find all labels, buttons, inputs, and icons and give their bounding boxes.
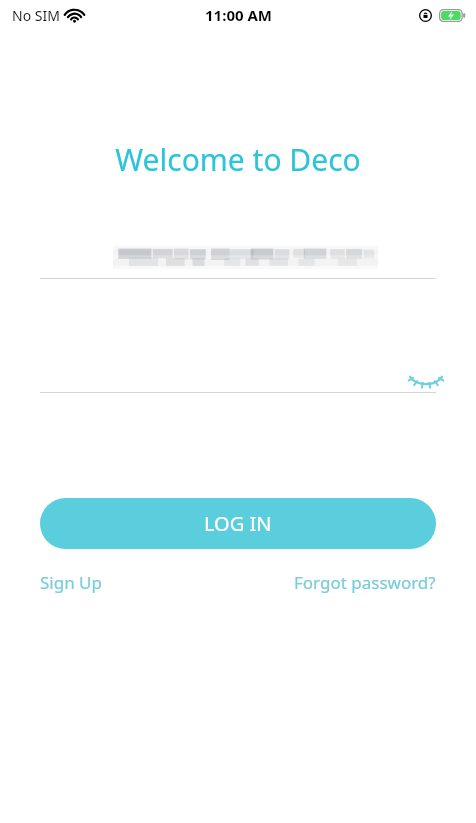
- button[interactable]: LOG IN: [40, 498, 436, 549]
- button[interactable]: Show password: [0, 279, 476, 392]
- button[interactable]: Show password: [409, 366, 443, 386]
- staticText: 11:00 AM: [205, 5, 272, 25]
- staticText: No SIM: [12, 6, 60, 25]
- button[interactable]: [0, 234, 476, 278]
- staticText: LOG IN: [204, 510, 272, 537]
- staticText: Forgot password?: [294, 571, 436, 594]
- staticText: Sign Up: [40, 571, 102, 594]
- button[interactable]: Forgot password?: [294, 571, 436, 594]
- button[interactable]: Sign Up: [40, 571, 102, 594]
- staticText: Welcome to Deco: [0, 139, 476, 180]
